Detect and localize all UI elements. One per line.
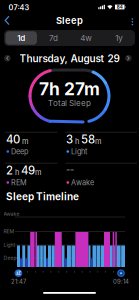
staticText: zZ: [16, 271, 21, 276]
staticText: h: [73, 137, 81, 146]
staticText: 58: [81, 133, 95, 146]
staticText: Deep: [11, 147, 28, 156]
staticText: 09:14: [113, 278, 129, 285]
staticText: h: [13, 168, 21, 177]
staticText: 49: [21, 164, 35, 177]
staticText: 3: [66, 133, 73, 146]
staticText: 1y: [115, 33, 122, 43]
staticText: Light: [3, 242, 15, 248]
staticText: Thursday, August 29: [19, 52, 119, 65]
staticText: m: [95, 137, 102, 146]
staticText: 40: [6, 133, 20, 146]
staticText: 07:43: [8, 3, 29, 12]
staticText: --: [66, 163, 74, 175]
staticText: Awake: [71, 178, 94, 187]
staticText: REM: [11, 178, 27, 187]
staticText: 2: [6, 164, 13, 177]
staticText: 7h 27m: [39, 78, 100, 99]
staticText: Light: [71, 147, 87, 156]
staticText: Sleep Timeline: [6, 190, 79, 203]
staticText: 7d: [49, 33, 58, 43]
staticText: REM: [3, 228, 14, 234]
staticText: m: [20, 137, 29, 146]
staticText: 1d: [17, 33, 25, 43]
staticText: Sleep: [56, 15, 83, 26]
staticText: 84: [117, 4, 123, 10]
staticText: Total Sleep: [48, 98, 91, 108]
staticText: 4w: [80, 33, 92, 43]
staticText: Deep: [3, 255, 16, 261]
staticText: 21:47: [11, 278, 26, 285]
staticText: m: [35, 168, 42, 177]
staticText: Awake: [3, 211, 19, 217]
